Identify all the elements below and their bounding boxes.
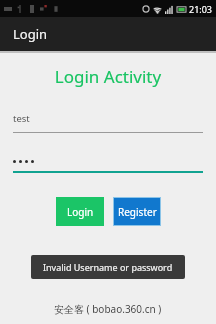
staticText: Login bbox=[13, 25, 48, 43]
staticText: Register bbox=[118, 205, 157, 219]
staticText: Invalid Username or password bbox=[43, 261, 173, 273]
staticText: Login Activity bbox=[0, 65, 216, 88]
staticText: 21:03 bbox=[189, 3, 213, 15]
staticText: 安全客 ( bobao.360.cn ) bbox=[54, 302, 162, 316]
button[interactable]: Register bbox=[113, 197, 161, 226]
button[interactable]: test bbox=[13, 112, 203, 133]
staticText: test bbox=[13, 112, 30, 125]
staticText: Login bbox=[67, 205, 94, 219]
button[interactable]: Login bbox=[56, 197, 104, 226]
other: Invalid Username or password bbox=[43, 261, 173, 273]
button[interactable] bbox=[13, 155, 203, 173]
